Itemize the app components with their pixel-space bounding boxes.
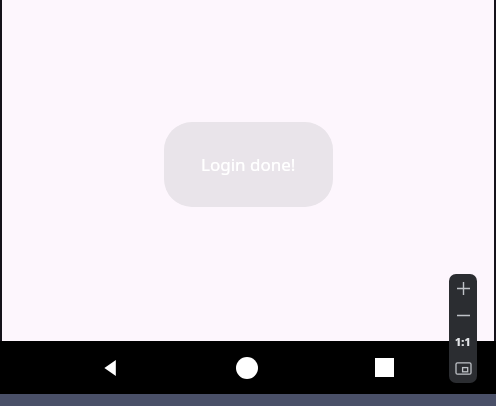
button[interactable]: Login done! (164, 122, 333, 207)
button[interactable]: Fit to window (449, 354, 477, 383)
button[interactable]: 1:1 (449, 328, 477, 354)
button[interactable]: Recent apps (356, 341, 412, 394)
button[interactable]: Zoom out (449, 302, 477, 328)
button[interactable]: Back (0, 341, 222, 394)
staticText: Login done! (201, 153, 296, 176)
button[interactable]: Home (222, 341, 496, 394)
staticText: 1:1 (455, 334, 471, 349)
button[interactable]: Zoom in (449, 274, 477, 302)
